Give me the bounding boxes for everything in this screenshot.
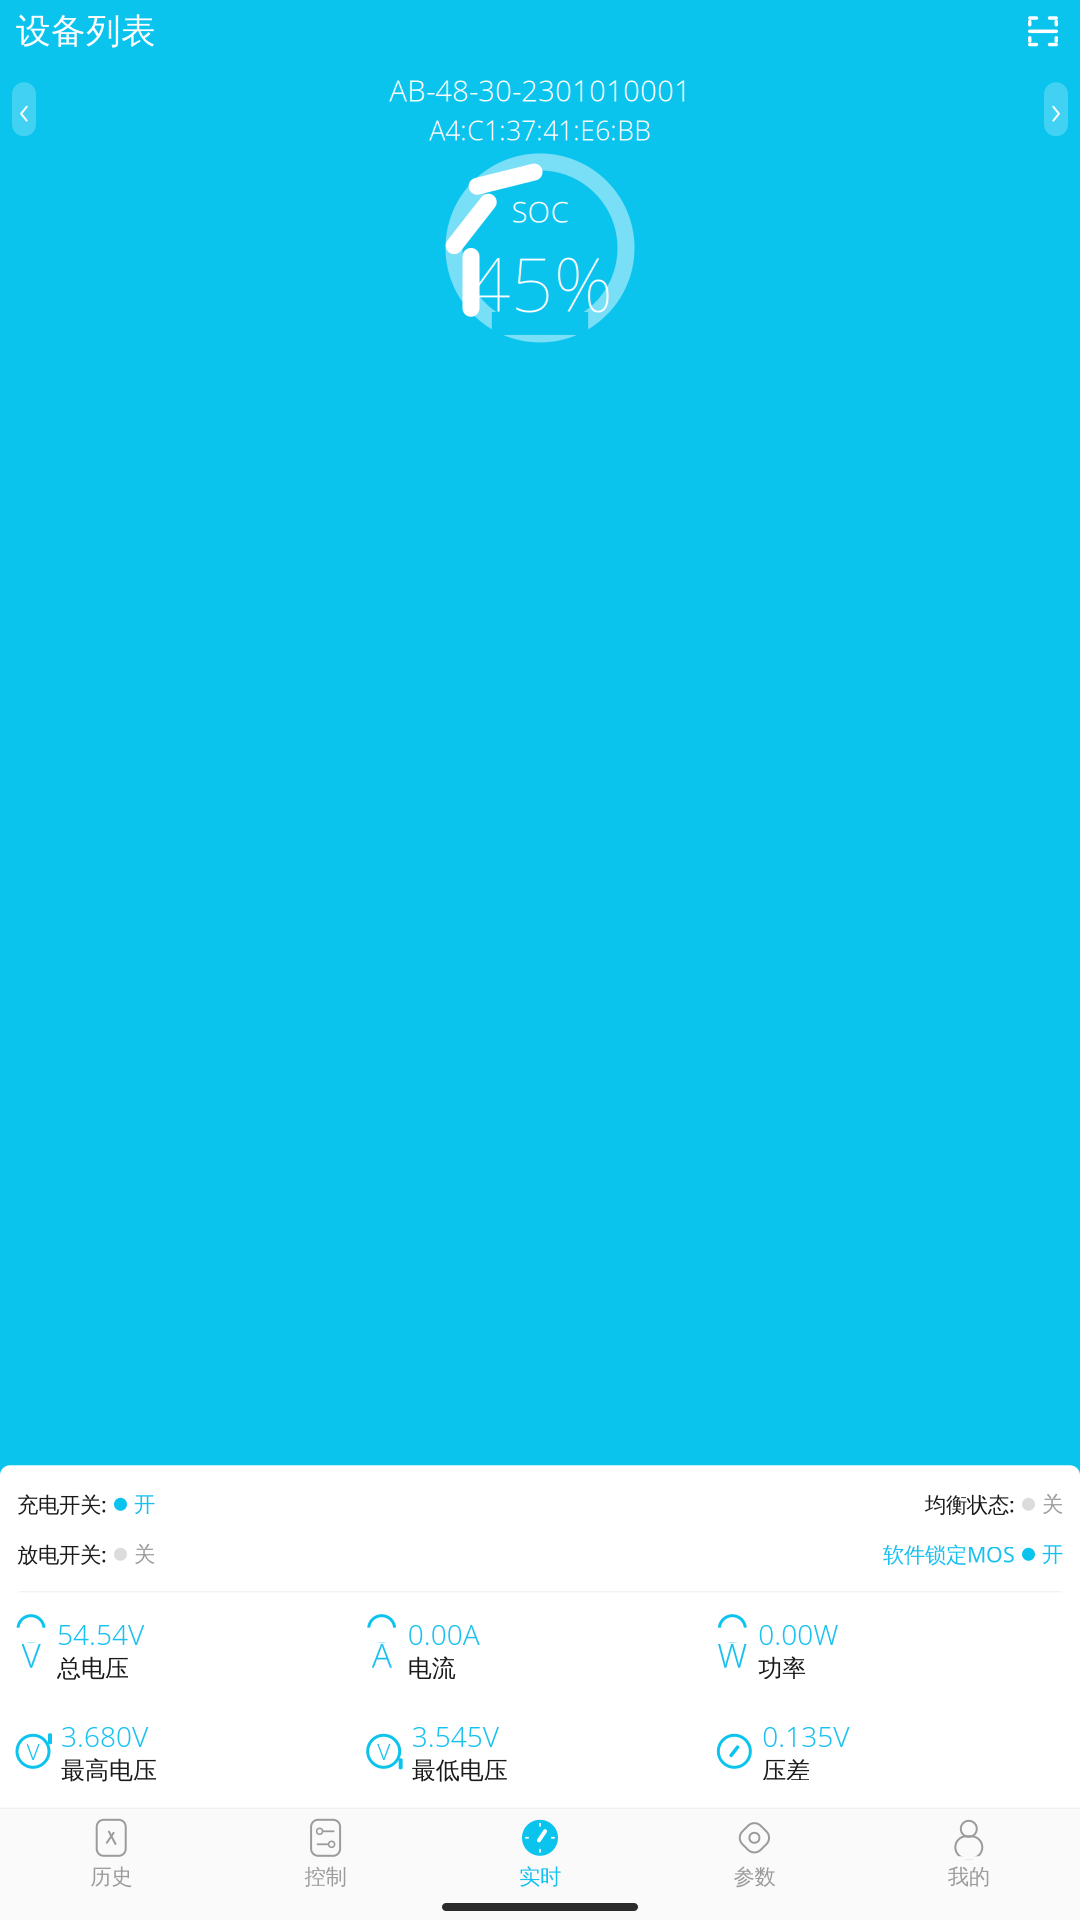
- staticText: 关: [1042, 1491, 1063, 1517]
- staticText: 软件锁定MOS: [883, 1540, 1015, 1568]
- staticText: 0.135V: [762, 1717, 849, 1755]
- staticText: 压差: [762, 1756, 810, 1785]
- staticText: 放电开关:: [17, 1540, 107, 1568]
- staticText: 最高电压: [61, 1756, 157, 1785]
- staticText: 控制: [305, 1864, 347, 1890]
- staticText: V: [26, 1736, 39, 1766]
- staticText: 开: [1042, 1541, 1063, 1567]
- staticText: 电流: [408, 1654, 456, 1683]
- button[interactable]: 充电开关:: [17, 1490, 155, 1518]
- staticText: 我的: [948, 1864, 990, 1890]
- staticText: 3.545V: [412, 1717, 499, 1755]
- staticText: 参数: [733, 1864, 775, 1890]
- staticText: V: [377, 1736, 390, 1766]
- staticText: 开: [134, 1491, 155, 1517]
- staticText: SOC: [511, 192, 568, 231]
- staticText: 总电压: [57, 1654, 129, 1683]
- button[interactable]: 放电开关:: [17, 1540, 155, 1568]
- staticText: A4:C1:37:41:E6:BB: [429, 112, 651, 148]
- staticText: 3.636V: [61, 1802, 148, 1839]
- staticText: ‹: [18, 83, 29, 136]
- staticText: 历史: [90, 1864, 132, 1890]
- staticText: 关: [134, 1541, 155, 1567]
- button[interactable]: Previous device: [12, 82, 36, 136]
- button[interactable]: Scan: [1022, 10, 1064, 52]
- button[interactable]: 控制: [218, 1809, 433, 1894]
- staticText: 0.00A: [408, 1615, 480, 1653]
- staticText: 45%: [467, 233, 612, 332]
- staticText: A: [372, 1633, 392, 1677]
- staticText: 均衡状态:: [925, 1490, 1015, 1518]
- staticText: 功率: [758, 1654, 806, 1683]
- staticText: 实时: [519, 1864, 561, 1890]
- staticText: V: [21, 1633, 40, 1677]
- staticText: W: [717, 1633, 747, 1677]
- staticText: AB-48-30-2301010001: [389, 71, 691, 110]
- button[interactable]: 参数: [647, 1809, 862, 1894]
- staticText: ›: [1050, 83, 1061, 136]
- staticText: 最低电压: [412, 1756, 508, 1785]
- button[interactable]: 均衡状态:: [925, 1490, 1063, 1518]
- button[interactable]: 软件锁定MOS: [883, 1540, 1063, 1568]
- staticText: 3.680V: [61, 1717, 148, 1755]
- staticText: 充电开关:: [17, 1490, 107, 1518]
- button[interactable]: 实时: [433, 1809, 647, 1894]
- staticText: 设备列表: [16, 10, 156, 53]
- button[interactable]: Next device: [1044, 82, 1068, 136]
- button[interactable]: 我的: [862, 1809, 1076, 1894]
- button[interactable]: 历史: [4, 1809, 218, 1894]
- staticText: 0.00W: [758, 1615, 838, 1653]
- staticText: 54.54V: [57, 1615, 144, 1653]
